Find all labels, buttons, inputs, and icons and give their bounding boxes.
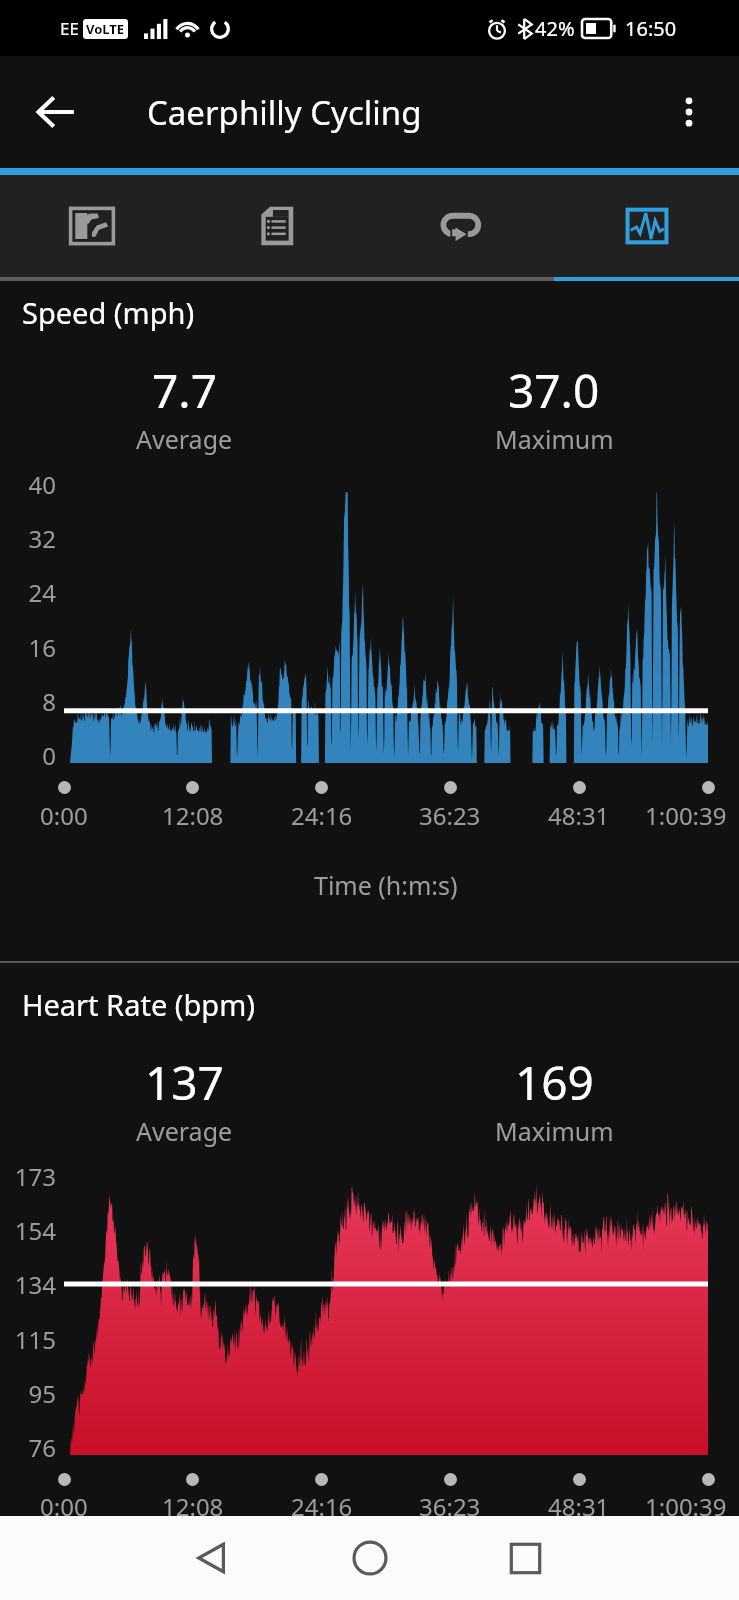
button[interactable]: Summary tab bbox=[184, 175, 369, 281]
staticText: Speed (mph) bbox=[22, 293, 195, 332]
staticText: 36:23 bbox=[419, 1490, 481, 1516]
staticText: 8 bbox=[0, 685, 56, 718]
staticText: 0:00 bbox=[40, 799, 88, 832]
staticText: 1:00:39 bbox=[645, 799, 727, 832]
staticText: 24:16 bbox=[291, 1490, 353, 1516]
staticText: 32 bbox=[0, 522, 56, 555]
staticText: 76 bbox=[0, 1431, 56, 1464]
staticText: 154 bbox=[0, 1214, 56, 1247]
staticText: VoLTE bbox=[86, 20, 125, 38]
button[interactable]: Charts tab bbox=[554, 175, 739, 281]
staticText: Heart Rate (bpm) bbox=[22, 985, 255, 1024]
button[interactable]: Map tab bbox=[0, 175, 184, 281]
staticText: 0 bbox=[0, 739, 56, 772]
staticText: Time (h:m:s) bbox=[314, 868, 458, 902]
button[interactable]: More options bbox=[655, 78, 723, 146]
staticText: 173 bbox=[0, 1160, 56, 1193]
staticText: EE bbox=[60, 17, 79, 40]
button[interactable]: Laps tab bbox=[369, 175, 554, 281]
button[interactable]: Home bbox=[330, 1518, 410, 1598]
button[interactable]: Recents bbox=[485, 1518, 565, 1598]
staticText: 40 bbox=[0, 468, 56, 501]
staticText: 12:08 bbox=[162, 1490, 224, 1516]
staticText: 169 bbox=[515, 1051, 594, 1114]
staticText: 0:00 bbox=[40, 1490, 88, 1516]
staticText: 37.0 bbox=[508, 359, 600, 422]
staticText: 24:16 bbox=[291, 799, 353, 832]
staticText: 16 bbox=[0, 631, 56, 664]
staticText: 48:31 bbox=[548, 799, 610, 832]
staticText: Maximum bbox=[495, 422, 614, 456]
staticText: Caerphilly Cycling bbox=[147, 90, 422, 135]
staticText: 24 bbox=[0, 576, 56, 609]
staticText: 48:31 bbox=[548, 1490, 610, 1516]
staticText: Average bbox=[136, 1114, 233, 1148]
staticText: Maximum bbox=[495, 1114, 614, 1148]
staticText: 137 bbox=[145, 1051, 224, 1114]
button[interactable]: Back bbox=[172, 1518, 252, 1598]
button[interactable]: Back bbox=[20, 76, 92, 148]
staticText: 1:00:39 bbox=[645, 1490, 727, 1516]
staticText: 42% bbox=[535, 15, 575, 42]
staticText: 12:08 bbox=[162, 799, 224, 832]
staticText: 16:50 bbox=[625, 15, 677, 42]
staticText: 95 bbox=[0, 1377, 56, 1410]
staticText: 115 bbox=[0, 1323, 56, 1356]
staticText: 134 bbox=[0, 1268, 56, 1301]
staticText: 36:23 bbox=[419, 799, 481, 832]
staticText: Average bbox=[136, 422, 233, 456]
staticText: 7.7 bbox=[152, 359, 217, 422]
